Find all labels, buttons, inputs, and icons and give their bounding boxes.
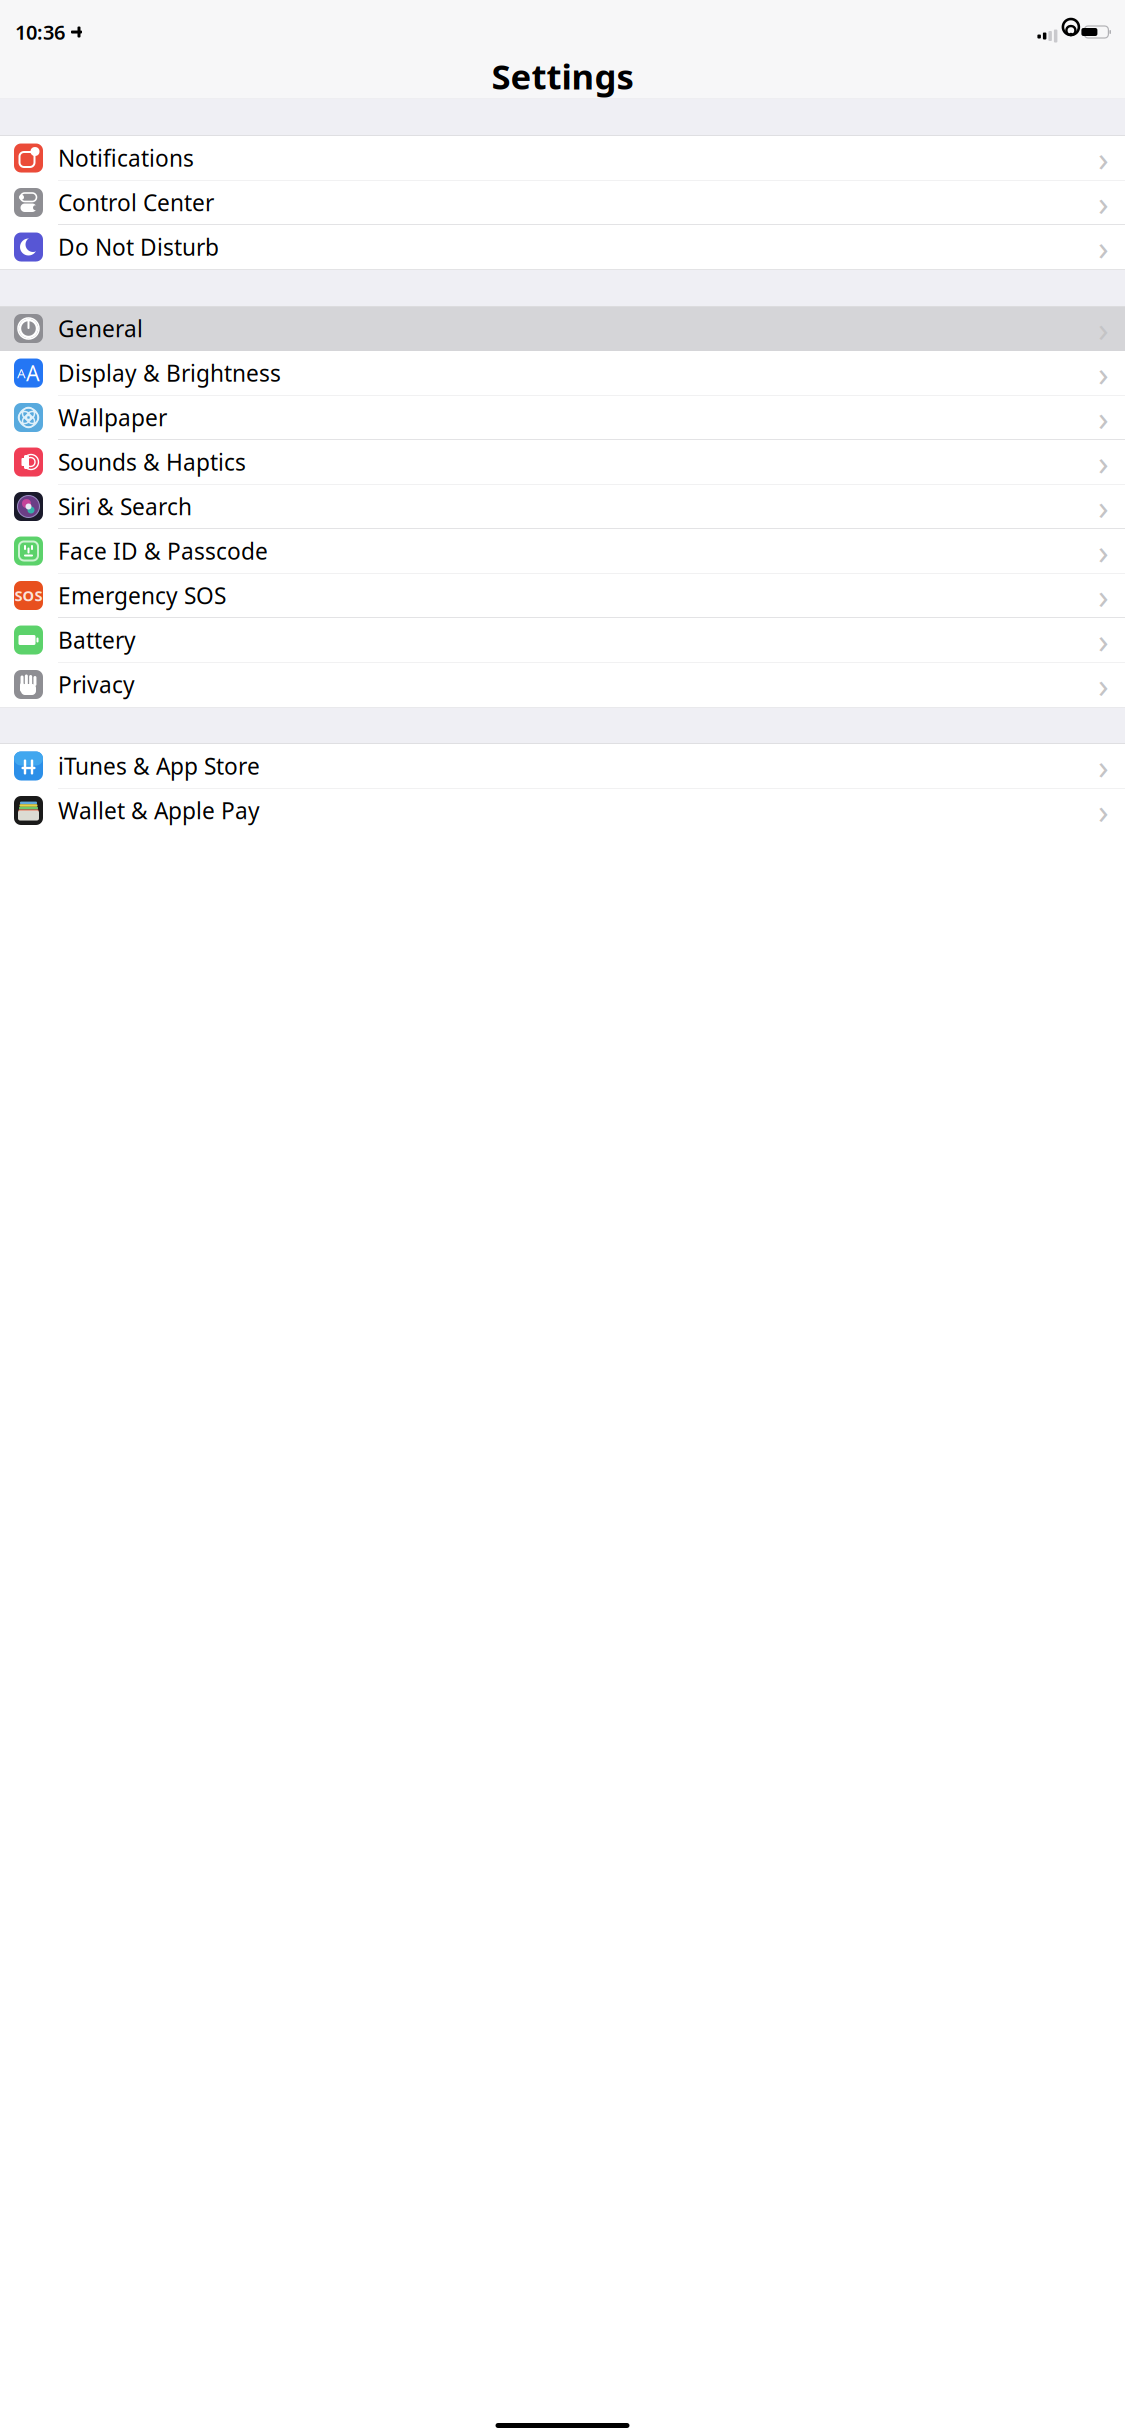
staticText: › [1098,135,1109,181]
staticText: Face ID & Passcode [58,536,268,566]
button[interactable]: iTunes & App Store [0,744,1125,788]
staticText: SOS [14,586,42,605]
staticText: Control Center [58,187,214,217]
staticText: › [1098,179,1109,225]
staticText: Emergency SOS [58,580,226,610]
staticText: › [1098,787,1109,833]
button[interactable]: General [0,306,1125,351]
staticText: Battery [58,625,136,655]
staticText: Wallet & Apple Pay [58,795,260,825]
staticText: A [26,359,40,387]
button[interactable]: Notifications [0,136,1125,180]
staticText: Display & Brightness [58,358,281,388]
staticText: › [1098,528,1109,574]
staticText: Do Not Disturb [58,232,219,262]
staticText: Notifications [58,143,194,173]
button[interactable]: Sounds & Haptics [0,440,1125,484]
staticText: › [1098,572,1109,618]
staticText: A [17,364,26,382]
button[interactable]: Battery [0,618,1125,662]
button[interactable]: Face ID & Passcode [0,529,1125,573]
button[interactable]: Do Not Disturb [0,225,1125,269]
button[interactable]: Siri & Search [0,484,1125,529]
staticText: iTunes & App Store [58,751,260,781]
staticText: Privacy [58,669,135,699]
staticText: Wallpaper [58,402,167,432]
button[interactable]: Privacy [0,662,1125,707]
staticText: › [1098,617,1109,663]
staticText: Sounds & Haptics [58,447,246,477]
staticText: › [1098,743,1109,789]
button[interactable]: Control Center [0,180,1125,225]
staticText: › [1098,439,1109,485]
staticText: Settings [491,53,633,99]
staticText: › [1098,661,1109,707]
staticText: 10:36 [15,19,65,45]
staticText: › [1098,305,1109,351]
staticText: General [58,313,143,343]
button[interactable]: Wallpaper [0,395,1125,440]
button[interactable]: SOS [0,573,1125,618]
staticText: › [1098,224,1109,270]
button[interactable]: Wallet & Apple Pay [0,788,1125,833]
staticText: › [1098,483,1109,529]
staticText: › [1098,394,1109,440]
staticText: › [1098,350,1109,396]
staticText: Siri & Search [58,491,192,521]
button[interactable]: A [0,351,1125,395]
